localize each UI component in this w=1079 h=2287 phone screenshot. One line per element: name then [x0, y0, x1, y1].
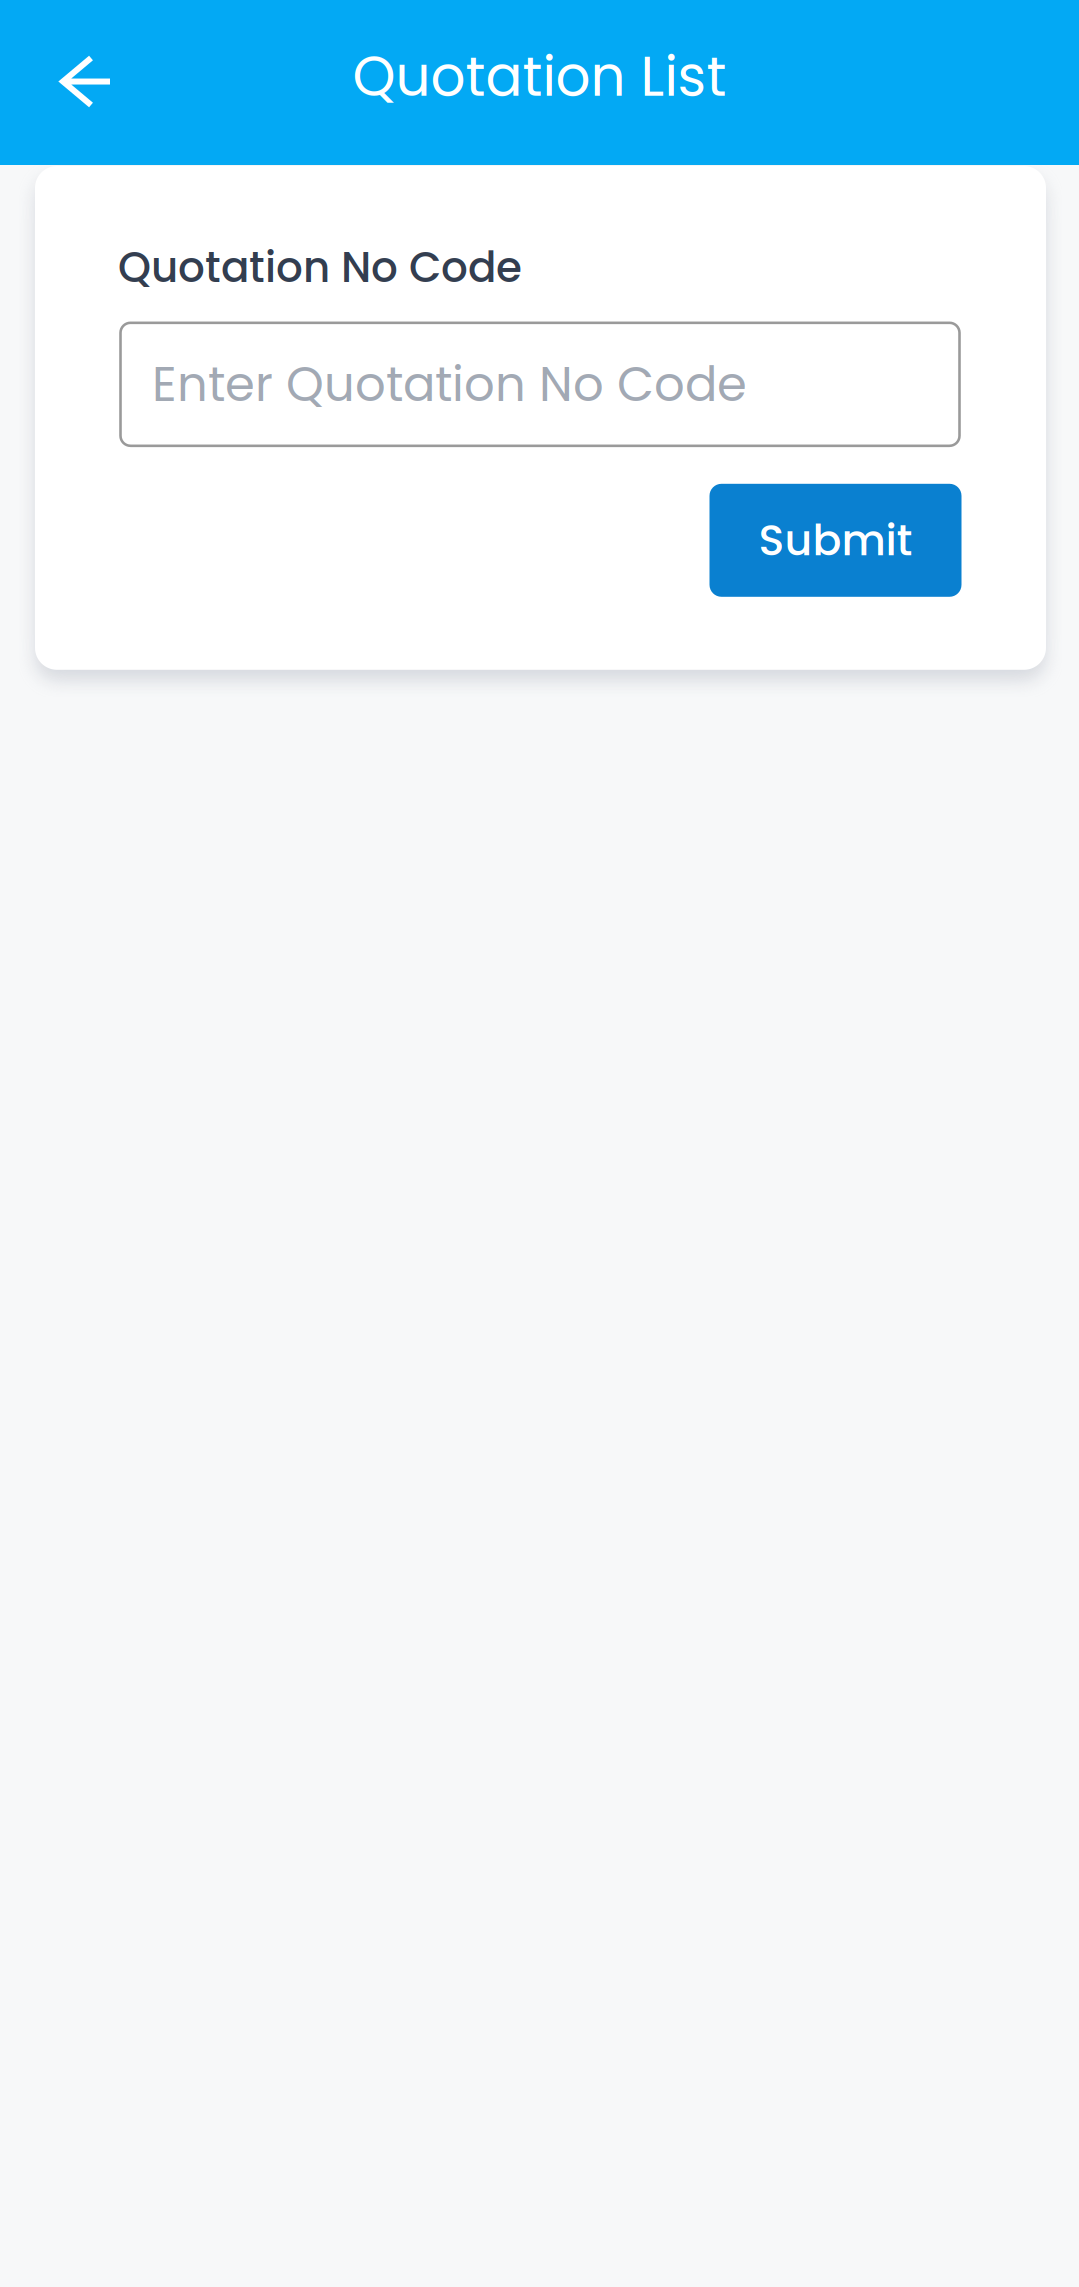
button[interactable]: Back — [35, 33, 133, 131]
staticText: Submit — [758, 510, 912, 570]
staticText: Quotation No Code — [118, 238, 522, 297]
staticText: Enter Quotation No Code — [152, 351, 747, 418]
button[interactable]: Submit — [709, 484, 961, 597]
button[interactable]: Enter Quotation No Code — [120, 323, 959, 446]
staticText: Quotation List — [352, 38, 726, 115]
